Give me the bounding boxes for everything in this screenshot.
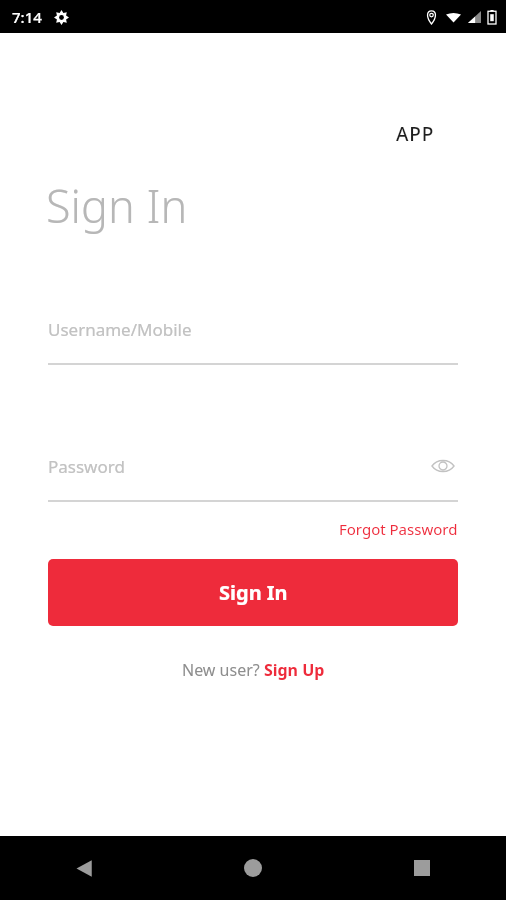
button[interactable]: New user? Sign Up (178, 656, 329, 684)
staticText: Sign In (46, 175, 188, 236)
staticText: 7:14 (12, 7, 42, 27)
button[interactable]: Forgot Password (335, 516, 462, 542)
button[interactable]: Home (168, 836, 337, 900)
button[interactable]: Back (0, 836, 168, 900)
staticText: APP (396, 121, 435, 147)
button[interactable]: Show password (428, 451, 458, 481)
button[interactable]: Recent apps (337, 836, 506, 900)
staticText: Password (48, 455, 125, 478)
button[interactable]: Sign In (48, 559, 458, 626)
staticText: Username/Mobile (48, 318, 192, 341)
staticText: Sign In (219, 579, 288, 606)
staticText: Forgot Password (339, 519, 458, 539)
staticText: New user? Sign Up (182, 659, 325, 681)
